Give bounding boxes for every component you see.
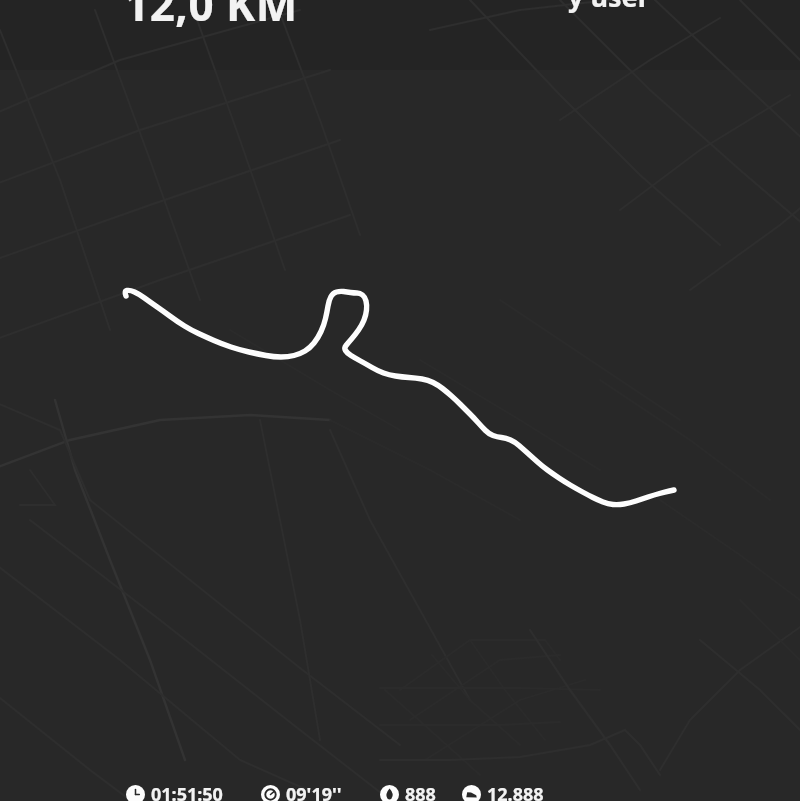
staticText: 888 bbox=[405, 782, 436, 801]
other: Steps bbox=[462, 785, 481, 801]
staticText: 12.888 bbox=[487, 782, 544, 801]
button[interactable]: Average pace bbox=[261, 782, 342, 801]
staticText: y user bbox=[568, 0, 650, 15]
other: Average pace bbox=[261, 785, 280, 801]
button[interactable]: Duration bbox=[126, 782, 223, 801]
staticText: 12,0 KM bbox=[124, 0, 298, 34]
button[interactable]: Calories bbox=[380, 782, 436, 801]
button[interactable]: y user bbox=[566, 0, 652, 15]
other: Duration bbox=[126, 785, 145, 801]
staticText: 09'19'' bbox=[286, 782, 342, 801]
button[interactable]: 12,0 KM bbox=[122, 0, 300, 34]
button[interactable]: Steps bbox=[462, 782, 544, 801]
staticText: 01:51:50 bbox=[151, 782, 223, 801]
other: Calories bbox=[380, 785, 399, 801]
